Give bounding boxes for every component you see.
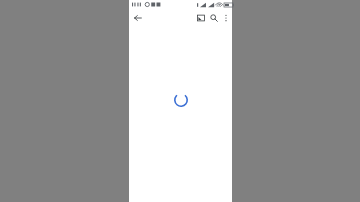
button[interactable]: Search [207, 11, 220, 24]
button[interactable]: More options [220, 12, 231, 23]
button[interactable]: Back [131, 11, 144, 24]
button[interactable]: Cast [194, 11, 207, 24]
